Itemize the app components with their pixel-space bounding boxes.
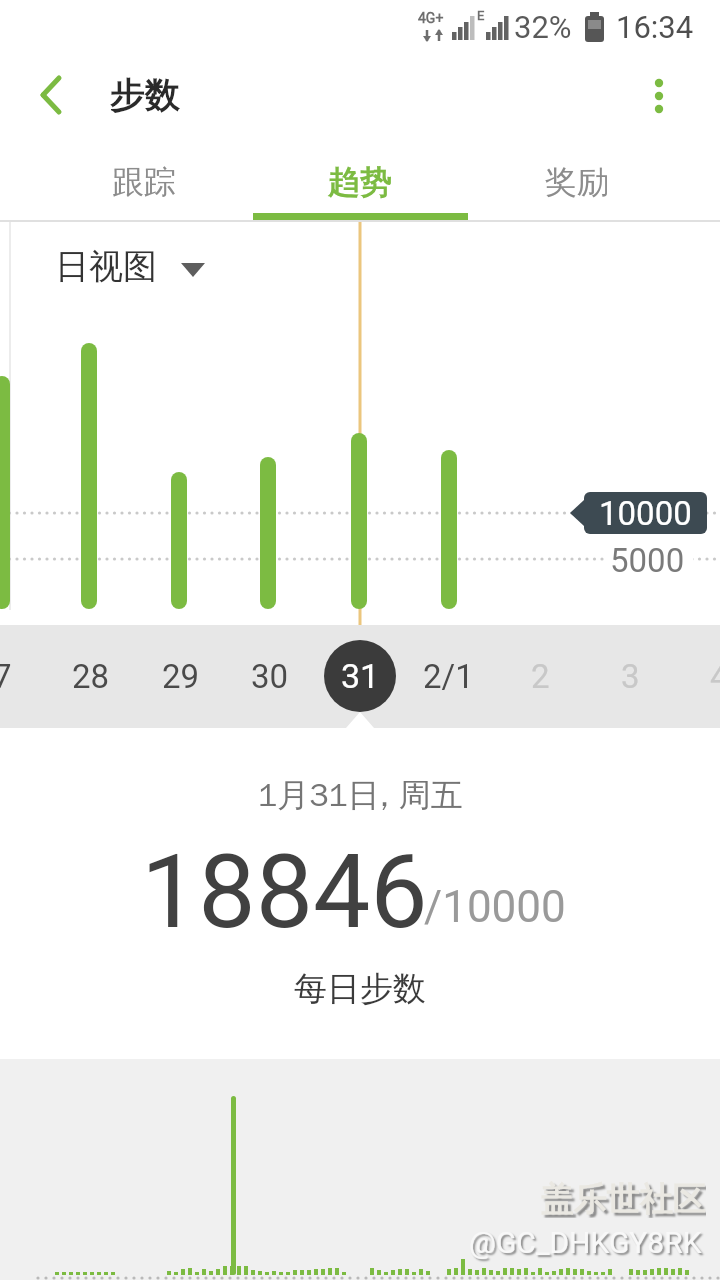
staticText: 奖励 [545,162,609,202]
button[interactable] [634,70,684,120]
button[interactable]: 2 [518,654,562,698]
button[interactable]: 3 [608,654,652,698]
staticText: 28 [72,657,110,696]
staticText: 4G+ [418,10,444,26]
staticText: 29 [162,657,200,696]
staticText: 5000 [610,541,685,578]
button[interactable]: 2/1 [413,654,483,698]
staticText: 4 [710,657,720,696]
button[interactable]: 趋势 [240,156,480,208]
button[interactable]: 日视图 [55,245,215,295]
staticText: 2 [531,657,550,696]
staticText: 30 [251,657,289,696]
staticText: 10000 [599,494,692,533]
staticText: 31 [341,656,380,696]
button[interactable] [28,70,78,120]
staticText: E [477,8,485,23]
staticText: 步数 [110,73,180,117]
button[interactable]: 奖励 [457,156,697,208]
staticText: 1月31日, 周五 [258,775,463,815]
button[interactable]: 31 [338,654,382,698]
staticText: 32% [514,9,572,45]
staticText: 每日步数 [294,968,426,1010]
staticText: 7 [0,657,12,696]
button[interactable]: 跟踪 [24,156,264,208]
staticText: 日视图 [55,245,157,288]
staticText: 盖乐世社区 [541,1178,706,1218]
staticText: 3 [621,657,640,696]
staticText: 16:34 [616,9,694,45]
staticText: 跟踪 [112,162,176,202]
button[interactable]: 30 [248,654,292,698]
staticText: /10000 [424,881,566,933]
staticText: 18846 [141,832,428,950]
button[interactable]: 28 [69,654,113,698]
button[interactable]: 29 [159,654,203,698]
staticText: @GC_DHKGY8RK [469,1225,702,1260]
button[interactable]: 7 [0,654,24,698]
staticText: 趋势 [328,162,392,202]
staticText: 2/1 [423,657,474,696]
